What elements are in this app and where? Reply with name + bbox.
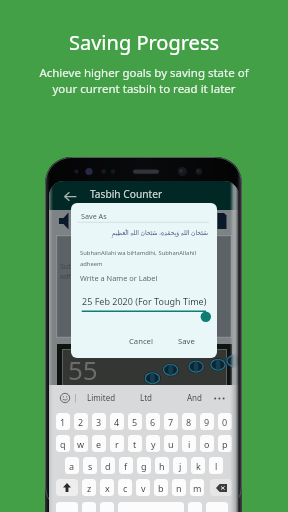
button[interactable] <box>82 502 96 512</box>
staticText: 55 <box>68 352 98 387</box>
button[interactable]: o <box>200 435 214 452</box>
button[interactable]: u <box>164 435 178 452</box>
button[interactable]: Ltd <box>137 388 155 407</box>
button[interactable]: 3 <box>92 413 106 430</box>
button[interactable]: j <box>173 457 187 474</box>
staticText: سُبْحَانَ اللهِ وَبِحَمْدِهِ، سُبْحَانَ … <box>79 229 208 237</box>
staticText: 3 <box>96 416 102 428</box>
button[interactable] <box>100 502 114 512</box>
staticText: z <box>87 482 92 494</box>
staticText: 7 <box>168 416 174 428</box>
staticText: Achieve higher goals by saving state of … <box>39 65 249 97</box>
staticText: Tasbih Counter <box>90 187 163 201</box>
button[interactable] <box>56 502 78 512</box>
button[interactable] <box>188 502 202 512</box>
button[interactable]: And <box>184 388 205 407</box>
button[interactable]: More suggestions <box>212 392 228 403</box>
button[interactable]: q <box>56 435 70 452</box>
staticText: 9 <box>204 416 210 428</box>
staticText: v <box>141 482 146 494</box>
button[interactable]: f <box>119 457 133 474</box>
button[interactable]: Cancel <box>123 333 159 349</box>
button[interactable]: e <box>92 435 106 452</box>
staticText: j <box>179 460 182 472</box>
button[interactable]: c <box>118 479 132 496</box>
staticText: 2 <box>78 416 84 428</box>
button[interactable]: 8 <box>182 413 196 430</box>
staticText: w <box>77 438 85 450</box>
button[interactable]: 5 <box>128 413 142 430</box>
button[interactable]: Limited <box>84 388 119 407</box>
staticText: Limited <box>87 392 116 403</box>
button[interactable]: 1 <box>56 413 70 430</box>
button[interactable]: z <box>82 479 96 496</box>
button[interactable]: r <box>110 435 124 452</box>
button[interactable]: b <box>154 479 168 496</box>
staticText: m <box>193 482 202 494</box>
button[interactable]: x <box>100 479 114 496</box>
button[interactable]: Save <box>172 333 201 349</box>
staticText: n <box>176 482 182 494</box>
staticText: 25 Feb 2020 (For Tough Time) <box>82 295 207 307</box>
button[interactable]: d <box>101 457 115 474</box>
staticText: l <box>215 460 218 472</box>
button[interactable]: t <box>128 435 142 452</box>
staticText: 6 <box>150 416 156 428</box>
button[interactable]: 0 <box>218 413 232 430</box>
button[interactable]: p <box>218 435 232 452</box>
staticText: g <box>141 460 147 472</box>
button[interactable]: 4 <box>110 413 124 430</box>
button[interactable] <box>206 502 228 512</box>
staticText: Ltd <box>140 392 152 403</box>
button[interactable]: 6 <box>146 413 160 430</box>
button[interactable]: Backspace <box>210 479 232 496</box>
button[interactable]: v <box>136 479 150 496</box>
button[interactable]: i <box>182 435 196 452</box>
button[interactable]: Back <box>64 192 77 201</box>
staticText: 1 <box>60 416 66 428</box>
staticText: a <box>69 460 75 472</box>
staticText: Save <box>178 336 195 346</box>
button[interactable]: n <box>172 479 186 496</box>
staticText: adheem <box>60 272 87 282</box>
staticText: 8 <box>186 416 192 428</box>
staticText: SubhanAllahi wa biHamdihi, SubhanAllahil <box>80 249 197 257</box>
button[interactable]: a <box>65 457 79 474</box>
button[interactable]: Emoji <box>60 393 70 403</box>
button[interactable]: Shift <box>56 479 78 496</box>
staticText: 4 <box>114 416 120 428</box>
button[interactable]: m <box>190 479 204 496</box>
staticText: t <box>133 438 137 450</box>
button[interactable]: w <box>74 435 88 452</box>
staticText: i <box>188 438 191 450</box>
staticText: r <box>115 438 119 450</box>
staticText: x <box>105 482 110 494</box>
button[interactable]: 2 <box>74 413 88 430</box>
staticText: e <box>96 438 102 450</box>
button[interactable]: k <box>191 457 205 474</box>
staticText: Write a Name or Label <box>80 273 158 283</box>
staticText: y <box>151 438 156 450</box>
staticText: Subhan <box>60 262 86 272</box>
button[interactable]: s <box>83 457 97 474</box>
button[interactable]: l <box>209 457 223 474</box>
staticText: s <box>88 460 93 472</box>
button[interactable]: 7 <box>164 413 178 430</box>
staticText: h <box>159 460 165 472</box>
button[interactable]: y <box>146 435 160 452</box>
staticText: u <box>168 438 174 450</box>
staticText: 5 <box>132 416 138 428</box>
button[interactable]: h <box>155 457 169 474</box>
staticText: p <box>222 438 228 450</box>
staticText: c <box>123 482 128 494</box>
staticText: o <box>204 438 210 450</box>
button[interactable]: g <box>137 457 151 474</box>
staticText: d <box>105 460 111 472</box>
staticText: 0 <box>222 416 228 428</box>
staticText: And <box>187 392 202 403</box>
staticText: b <box>158 482 164 494</box>
staticText: adheem <box>80 260 103 268</box>
button[interactable]: 9 <box>200 413 214 430</box>
staticText: Cancel <box>129 336 153 346</box>
